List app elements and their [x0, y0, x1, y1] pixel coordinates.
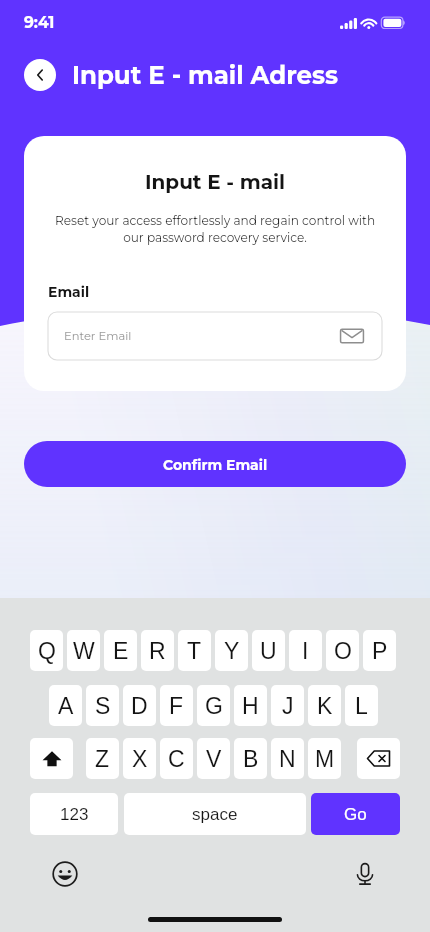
- staticText: Reset your access effortlessly and regai…: [49, 213, 381, 245]
- button[interactable]: A: [49, 685, 82, 726]
- staticText: K: [317, 693, 333, 719]
- staticText: F: [169, 693, 184, 719]
- button[interactable]: P: [363, 630, 396, 671]
- staticText: J: [282, 693, 294, 719]
- staticText: Go: [344, 805, 367, 824]
- button[interactable]: L: [345, 685, 378, 726]
- staticText: X: [132, 746, 148, 772]
- staticText: Input E - mail Adress: [72, 60, 338, 90]
- button[interactable]: B: [234, 738, 267, 779]
- button[interactable]: 123: [30, 793, 118, 835]
- button[interactable]: I: [289, 630, 322, 671]
- staticText: Email: [48, 283, 90, 300]
- button[interactable]: Enter Email: [48, 312, 382, 360]
- button[interactable]: Backspace: [357, 738, 400, 779]
- staticText: Q: [38, 638, 56, 664]
- button[interactable]: Emoji keyboard: [51, 860, 79, 888]
- staticText: M: [315, 746, 335, 772]
- button[interactable]: N: [271, 738, 304, 779]
- staticText: B: [243, 746, 259, 772]
- staticText: G: [205, 693, 223, 719]
- button[interactable]: E: [104, 630, 137, 671]
- button[interactable]: Shift: [30, 738, 73, 779]
- staticText: I: [302, 638, 309, 664]
- staticText: 9:41: [24, 13, 55, 32]
- staticText: U: [260, 638, 277, 664]
- button[interactable]: S: [86, 685, 119, 726]
- button[interactable]: H: [234, 685, 267, 726]
- staticText: 123: [60, 805, 89, 824]
- button[interactable]: T: [178, 630, 211, 671]
- button[interactable]: R: [141, 630, 174, 671]
- button[interactable]: J: [271, 685, 304, 726]
- staticText: Enter Email: [64, 329, 132, 343]
- staticText: N: [279, 746, 296, 772]
- staticText: L: [355, 693, 368, 719]
- staticText: W: [73, 638, 95, 664]
- button[interactable]: D: [123, 685, 156, 726]
- button[interactable]: Z: [86, 738, 119, 779]
- button[interactable]: Go: [311, 793, 400, 835]
- button[interactable]: G: [197, 685, 230, 726]
- staticText: H: [242, 693, 259, 719]
- staticText: T: [187, 638, 202, 664]
- button[interactable]: C: [160, 738, 193, 779]
- staticText: Y: [224, 638, 240, 664]
- staticText: Input E - mail: [24, 170, 406, 194]
- staticText: V: [206, 746, 222, 772]
- staticText: Confirm Email: [163, 456, 268, 473]
- staticText: C: [168, 746, 185, 772]
- staticText: P: [372, 638, 388, 664]
- button[interactable]: O: [326, 630, 359, 671]
- staticText: S: [95, 693, 111, 719]
- button[interactable]: K: [308, 685, 341, 726]
- button[interactable]: X: [123, 738, 156, 779]
- button[interactable]: Confirm Email: [24, 441, 406, 487]
- button[interactable]: U: [252, 630, 285, 671]
- staticText: E: [113, 638, 129, 664]
- button[interactable]: V: [197, 738, 230, 779]
- button[interactable]: Q: [30, 630, 63, 671]
- staticText: A: [58, 693, 74, 719]
- staticText: O: [334, 638, 352, 664]
- staticText: space: [192, 805, 238, 824]
- button[interactable]: W: [67, 630, 100, 671]
- button[interactable]: M: [308, 738, 341, 779]
- button[interactable]: Voice input: [351, 860, 379, 888]
- button[interactable]: F: [160, 685, 193, 726]
- staticText: R: [149, 638, 166, 664]
- button[interactable]: Back: [24, 59, 56, 91]
- button[interactable]: Y: [215, 630, 248, 671]
- staticText: D: [131, 693, 148, 719]
- staticText: Z: [95, 746, 110, 772]
- button[interactable]: space: [124, 793, 306, 835]
